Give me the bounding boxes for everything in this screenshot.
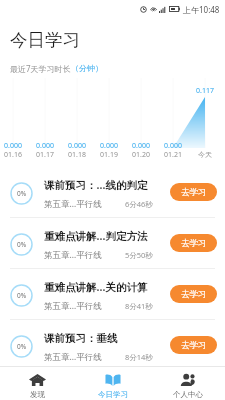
button[interactable]: 今日学习	[75, 367, 150, 400]
staticText: 第五章…平行线	[44, 300, 102, 312]
staticText: 今日学习	[98, 390, 128, 399]
staticText: 去学习	[181, 289, 207, 300]
button[interactable]: 去学习	[170, 336, 217, 354]
staticText: 上午10:48	[183, 4, 220, 15]
button[interactable]: 发现	[0, 367, 75, 400]
staticText: 第五章…平行线	[44, 249, 102, 261]
staticText: 01.16	[4, 150, 22, 160]
button[interactable]: 0%	[0, 218, 225, 268]
staticText: 0.117	[196, 86, 214, 96]
button[interactable]: 去学习	[170, 234, 217, 252]
button[interactable]: 0%	[0, 167, 225, 217]
staticText: 01.20	[132, 150, 150, 160]
staticText: 0%	[17, 342, 27, 351]
button[interactable]: 0%	[0, 269, 225, 319]
staticText: 0.000	[36, 141, 54, 151]
staticText: 去学习	[181, 187, 207, 198]
staticText: 01.19	[100, 150, 118, 160]
button[interactable]: 去学习	[170, 285, 217, 303]
staticText: 去学习	[181, 238, 207, 249]
staticText: 课前预习：…线的判定	[44, 178, 148, 192]
staticText: 01.21	[164, 150, 182, 160]
button[interactable]: 0%	[0, 320, 225, 370]
staticText: 0%	[17, 189, 27, 198]
staticText: 01.18	[68, 150, 86, 160]
staticText: 0.000	[4, 141, 22, 151]
staticText: 去学习	[181, 340, 207, 351]
staticText: 个人中心	[173, 390, 203, 399]
staticText: 第五章…平行线	[44, 198, 102, 210]
staticText: 0.000	[132, 141, 150, 151]
staticText: 8分14秒	[125, 352, 153, 362]
staticText: 0.000	[164, 141, 182, 151]
button[interactable]: 个人中心	[150, 367, 225, 400]
staticText: 今天	[198, 150, 212, 159]
staticText: 01.17	[36, 150, 54, 160]
staticText: 0%	[17, 291, 27, 300]
staticText: 8分41秒	[125, 301, 153, 311]
staticText: 课前预习：垂线	[44, 332, 118, 345]
staticText: （分钟）	[71, 63, 103, 73]
staticText: 第五章…平行线	[44, 351, 102, 363]
staticText: 发现	[30, 390, 45, 399]
staticText: 0.000	[68, 141, 86, 151]
staticText: 6分46秒	[125, 199, 153, 209]
staticText: 0.000	[100, 141, 118, 151]
button[interactable]: 去学习	[170, 183, 217, 201]
staticText: 5分50秒	[125, 250, 153, 260]
staticText: 最近7天学习时长	[10, 63, 71, 74]
staticText: 重难点讲解…关的计算	[44, 280, 148, 294]
staticText: 0%	[17, 240, 27, 249]
staticText: 重难点讲解…判定方法	[44, 229, 148, 243]
staticText: 今日学习	[10, 29, 80, 51]
